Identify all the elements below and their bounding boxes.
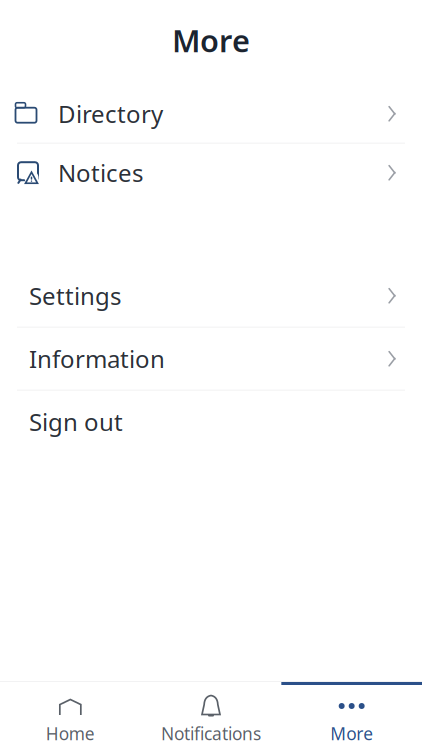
staticText: More bbox=[172, 20, 250, 61]
button[interactable]: Notifications bbox=[141, 682, 281, 750]
button[interactable]: Settings bbox=[0, 265, 422, 327]
button[interactable]: Notices bbox=[0, 144, 422, 202]
staticText: Information bbox=[29, 343, 165, 375]
button[interactable]: More bbox=[281, 682, 422, 750]
button[interactable]: Home bbox=[0, 682, 141, 750]
button[interactable]: Information bbox=[0, 328, 422, 390]
button[interactable]: Directory bbox=[0, 85, 422, 143]
staticText: Notices bbox=[58, 157, 143, 189]
staticText: Settings bbox=[29, 280, 121, 312]
staticText: Notifications bbox=[161, 722, 261, 745]
staticText: Directory bbox=[58, 98, 163, 130]
staticText: Sign out bbox=[29, 406, 123, 438]
staticText: More bbox=[330, 722, 373, 745]
staticText: Home bbox=[46, 722, 95, 745]
button[interactable]: Sign out bbox=[0, 391, 422, 453]
